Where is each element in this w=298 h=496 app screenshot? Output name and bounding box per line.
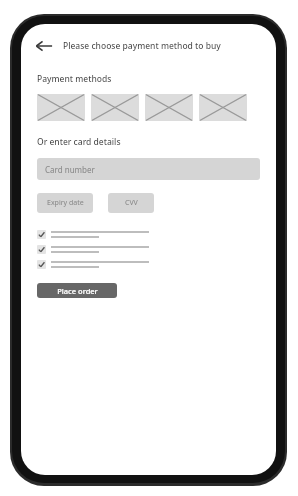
button[interactable]: Back	[33, 35, 55, 57]
button[interactable]: Payment method	[199, 94, 247, 121]
button[interactable]	[37, 230, 276, 239]
button[interactable]: Expiry date	[37, 193, 93, 213]
button[interactable]: Payment method	[145, 94, 193, 121]
button[interactable]: Card number	[37, 158, 260, 180]
staticText: Please choose payment method to buy	[63, 40, 221, 52]
button[interactable]: Payment method	[91, 94, 139, 121]
staticText: CVV	[125, 198, 138, 208]
button[interactable]: Place order	[37, 283, 117, 298]
staticText: Expiry date	[47, 198, 84, 208]
staticText: Place order	[57, 286, 98, 296]
button[interactable]: CVV	[108, 193, 154, 213]
staticText: Payment methods	[37, 73, 112, 85]
button[interactable]	[37, 245, 276, 254]
staticText: Or enter card details	[37, 136, 121, 148]
button[interactable]: Payment method	[37, 94, 85, 121]
staticText: Card number	[45, 164, 95, 175]
button[interactable]	[37, 260, 276, 269]
